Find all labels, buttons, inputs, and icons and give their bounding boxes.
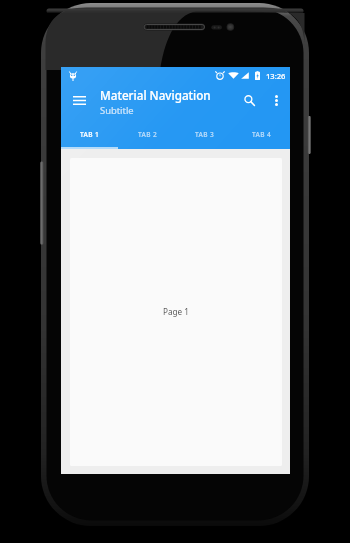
button[interactable]: TAB 2 <box>119 118 176 149</box>
staticText: TAB 4 <box>252 130 272 139</box>
staticText: TAB 2 <box>138 130 158 139</box>
button[interactable]: Search <box>238 82 260 118</box>
button[interactable]: TAB 3 <box>176 118 233 149</box>
button[interactable]: More options <box>265 82 287 118</box>
staticText: Page 1 <box>163 306 190 317</box>
button[interactable]: TAB 4 <box>233 118 290 149</box>
staticText: TAB 3 <box>195 130 215 139</box>
staticText: 13:26 <box>266 71 286 81</box>
button[interactable]: Open navigation drawer <box>67 82 91 118</box>
button[interactable]: TAB 1 <box>61 118 119 149</box>
staticText: Material Navigation <box>100 87 211 103</box>
staticText: TAB 1 <box>80 130 100 139</box>
staticText: Subtitle <box>100 104 134 117</box>
